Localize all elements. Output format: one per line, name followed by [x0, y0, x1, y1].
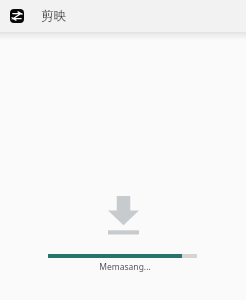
other: Install progress 90 percent [48, 254, 197, 258]
button[interactable]: CapCut app icon [0, 0, 246, 32]
button[interactable]: CapCut app icon [10, 9, 24, 23]
staticText: 剪映 [41, 8, 66, 24]
staticText: Memasang... [99, 261, 151, 273]
other: Downloading [108, 196, 139, 235]
